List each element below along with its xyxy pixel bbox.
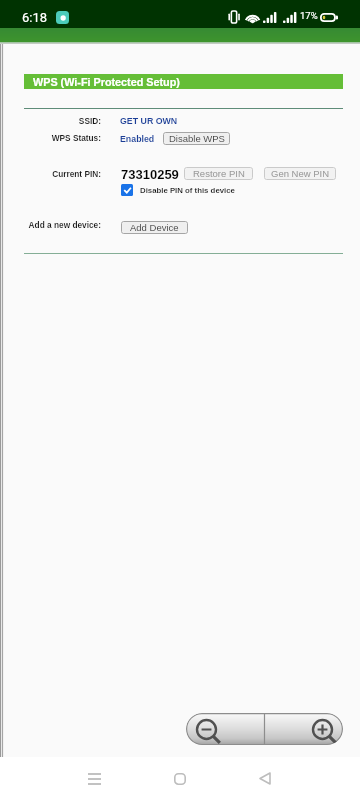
button[interactable]: Back [245,762,285,795]
staticText: 73310259 [121,167,179,182]
button[interactable]: Zoom in [265,713,343,745]
staticText: Disable WPS [169,133,225,144]
staticText: Enabled [120,134,155,144]
staticText: Disable PIN of this device [140,186,235,195]
staticText: Restore PIN [193,168,245,179]
staticText: Add Device [130,222,179,233]
button[interactable]: Disable PIN of this device [121,184,235,196]
button[interactable]: Home [160,762,200,795]
button[interactable]: Recent apps [74,762,114,795]
staticText: 17% [300,10,318,21]
button[interactable]: Gen New PIN [264,167,336,180]
button[interactable]: Disable WPS [163,132,230,145]
button[interactable]: Zoom out [186,713,264,745]
button[interactable]: Restore PIN [184,167,253,180]
staticText: WPS (Wi-Fi Protected Setup) [33,76,180,88]
staticText: WPS Status: [5,133,101,142]
staticText: SSID: [5,116,101,125]
button[interactable]: Add Device [121,221,188,234]
staticText: Gen New PIN [271,168,330,179]
staticText: GET UR OWN [120,116,178,126]
staticText: Current PIN: [5,169,101,178]
staticText: Add a new device: [5,220,101,229]
staticText: 6:18 [22,10,48,25]
